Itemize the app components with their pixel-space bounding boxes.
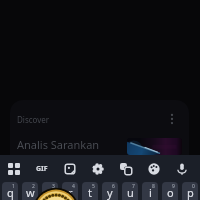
button[interactable]: More options <box>165 112 179 126</box>
staticText: 5 <box>92 183 95 190</box>
staticText: o <box>167 185 174 200</box>
staticText: p <box>187 185 194 200</box>
button[interactable]: e <box>42 182 58 200</box>
button[interactable]: p <box>182 182 198 200</box>
button[interactable]: Translate <box>112 155 140 182</box>
button[interactable]: q <box>2 182 18 200</box>
button[interactable] <box>127 138 182 155</box>
button[interactable]: GIF <box>28 155 56 182</box>
staticText: 0 <box>192 183 195 190</box>
staticText: 4 <box>72 183 75 190</box>
staticText: Discover <box>17 114 50 125</box>
staticText: u <box>127 185 134 200</box>
button[interactable]: Voice input <box>168 155 196 182</box>
staticText: t <box>88 185 92 200</box>
staticText: r <box>68 185 73 200</box>
staticText: 9 <box>172 183 175 190</box>
button[interactable]: Settings <box>84 155 112 182</box>
staticText: y <box>107 185 113 200</box>
staticText: 1 <box>12 183 15 190</box>
button[interactable]: y <box>102 182 118 200</box>
button[interactable]: u <box>122 182 138 200</box>
button[interactable]: Stickers <box>56 155 84 182</box>
staticText: w <box>26 185 35 200</box>
button[interactable]: r <box>62 182 78 200</box>
button[interactable]: w <box>22 182 38 200</box>
staticText: GIF <box>36 164 48 174</box>
staticText: Analis Sarankan <box>17 137 100 152</box>
staticText: q <box>7 185 14 200</box>
button[interactable]: o <box>162 182 178 200</box>
button[interactable]: i <box>142 182 158 200</box>
button[interactable]: Apps <box>0 155 28 182</box>
staticText: e <box>47 185 54 200</box>
button[interactable]: t <box>82 182 98 200</box>
staticText: 2 <box>32 183 35 190</box>
staticText: 7 <box>132 183 135 190</box>
staticText: i <box>149 185 152 200</box>
staticText: 3 <box>52 183 55 190</box>
button[interactable]: Themes <box>140 155 168 182</box>
staticText: 8 <box>152 183 155 190</box>
staticText: 6 <box>112 183 115 190</box>
